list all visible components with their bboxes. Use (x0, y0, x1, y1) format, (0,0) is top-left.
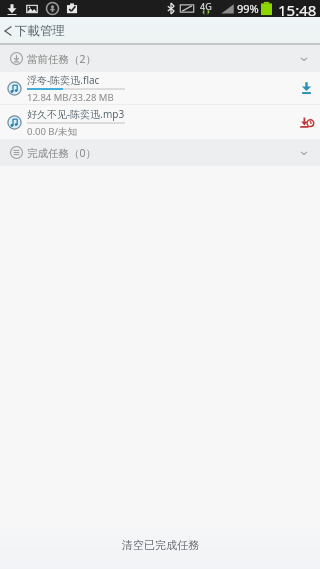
button[interactable]: 清空已完成任務 (0, 528, 320, 569)
staticText: 完成任務（0） (27, 146, 97, 160)
button[interactable]: 下載管理 (0, 17, 320, 45)
button[interactable]: 完成任務（0） (0, 139, 320, 166)
staticText: 當前任務（2） (27, 52, 97, 66)
button[interactable]: 浮夸-陈奕迅.flac (0, 72, 320, 104)
button[interactable]: Pending download (293, 105, 319, 139)
button[interactable]: Downloading (293, 72, 319, 104)
staticText: 12.84 MB/33.28 MB (27, 91, 114, 104)
staticText: 浮夸-陈奕迅.flac (27, 73, 100, 87)
staticText: 下載管理 (15, 23, 65, 39)
staticText: 15:48 (278, 0, 317, 17)
button[interactable]: 當前任務（2） (0, 45, 320, 72)
staticText: 清空已完成任務 (122, 538, 199, 552)
staticText: 4G (200, 0, 212, 12)
staticText: 0.00 B/未知 (27, 125, 78, 138)
staticText: 99% (237, 1, 259, 16)
button[interactable]: 好久不见-陈奕迅.mp3 (0, 105, 320, 139)
staticText: 好久不见-陈奕迅.mp3 (27, 107, 125, 121)
